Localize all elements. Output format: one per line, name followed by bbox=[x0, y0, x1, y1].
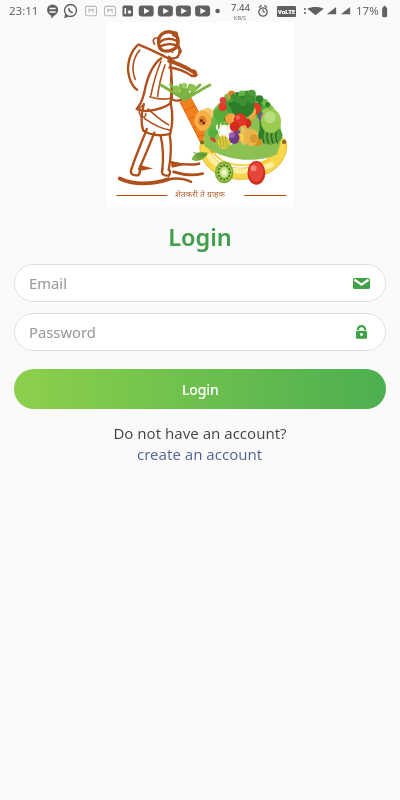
staticText: Login bbox=[182, 380, 219, 399]
staticText: Do not have an account? bbox=[0, 423, 400, 443]
staticText: Password bbox=[29, 322, 96, 342]
button[interactable]: Email bbox=[14, 264, 386, 302]
staticText: शेतकरी ते ग्राहक bbox=[175, 188, 226, 200]
staticText: KB/S bbox=[234, 14, 247, 21]
staticText: VoLTE bbox=[278, 8, 295, 16]
button[interactable]: Login bbox=[14, 369, 386, 409]
other: Password bbox=[353, 324, 370, 341]
staticText: 17% bbox=[356, 3, 379, 19]
staticText: Email bbox=[29, 273, 67, 293]
staticText: Login bbox=[0, 221, 400, 253]
staticText: 23:11 bbox=[9, 3, 39, 19]
button[interactable]: Password bbox=[14, 313, 386, 351]
other: Email bbox=[353, 275, 370, 292]
staticText: 7.44 bbox=[231, 1, 250, 14]
button[interactable]: create an account bbox=[137, 444, 263, 464]
